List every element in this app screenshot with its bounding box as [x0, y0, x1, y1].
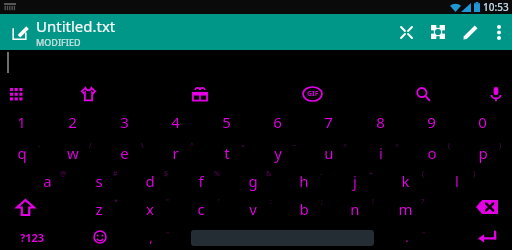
staticText: j	[353, 171, 357, 191]
button[interactable]: e	[103, 139, 154, 167]
staticText: 6	[273, 112, 282, 132]
button[interactable]: x	[128, 195, 179, 223]
staticText: 4	[171, 112, 180, 132]
button[interactable]: h	[282, 167, 333, 195]
staticText: _	[422, 225, 426, 235]
button[interactable]: Fullscreen	[390, 16, 422, 48]
button[interactable]: 8	[359, 108, 410, 136]
staticText: b	[299, 199, 309, 219]
staticText: m	[398, 199, 413, 219]
staticText: '	[218, 197, 220, 207]
staticText: e	[120, 143, 129, 163]
staticText: u	[324, 143, 334, 163]
button[interactable]: Shift	[0, 192, 51, 222]
staticText: n	[350, 199, 360, 219]
staticText: /	[89, 141, 92, 151]
button[interactable]: p	[461, 139, 512, 167]
staticText: z	[95, 199, 103, 219]
button[interactable]: ?123	[0, 224, 64, 250]
staticText: w	[67, 143, 79, 163]
button[interactable]: 0	[461, 108, 512, 136]
button[interactable]: c	[179, 195, 230, 223]
button[interactable]: m	[384, 195, 435, 223]
button[interactable]: v	[231, 195, 282, 223]
staticText: a	[43, 171, 52, 191]
staticText: %	[214, 169, 220, 179]
button[interactable]: Edit file	[4, 17, 34, 47]
button[interactable]: 7	[307, 108, 358, 136]
staticText: t	[224, 143, 230, 163]
staticText: *	[114, 197, 118, 207]
button[interactable]: o	[410, 139, 461, 167]
staticText: c	[197, 199, 205, 219]
staticText: 9	[427, 112, 436, 132]
staticText: GIF	[307, 89, 319, 99]
staticText: ?	[421, 197, 425, 207]
staticText: x	[146, 199, 154, 219]
button[interactable]: Edit	[454, 16, 486, 48]
staticText: q	[17, 143, 27, 163]
staticText: #	[113, 169, 118, 179]
button[interactable]: 9	[410, 108, 461, 136]
staticText: _	[166, 225, 170, 235]
button[interactable]: GIF	[298, 80, 326, 108]
button[interactable]: Stickers	[186, 80, 214, 108]
staticText: @	[60, 169, 67, 179]
button[interactable]: i	[359, 139, 410, 167]
staticText: 0	[478, 112, 487, 132]
staticText: +	[369, 169, 374, 179]
staticText: Untitled.txt	[36, 16, 116, 36]
button[interactable]: Backspace	[461, 192, 512, 222]
staticText: (	[448, 141, 451, 151]
staticText: 3	[120, 112, 129, 132]
staticText: MODIFIED	[36, 36, 81, 48]
button[interactable]: l	[435, 167, 486, 195]
button[interactable]: b	[282, 195, 333, 223]
button[interactable]: d	[128, 167, 179, 195]
button[interactable]: Voice input	[482, 80, 510, 108]
staticText: &	[266, 169, 272, 179]
button[interactable]: Emoji	[75, 224, 125, 250]
button[interactable]: 2	[51, 108, 102, 136]
button[interactable]: Themes	[74, 80, 102, 108]
button[interactable]: Enter	[461, 224, 512, 250]
staticText: "	[166, 197, 169, 207]
button[interactable]: g	[231, 167, 282, 195]
button[interactable]: ,	[129, 223, 180, 250]
button[interactable]: u	[307, 139, 358, 167]
staticText: -	[38, 141, 41, 151]
button[interactable]: .	[385, 223, 436, 250]
staticText: g	[248, 171, 258, 191]
button[interactable]: 4	[154, 108, 205, 136]
button[interactable]: j	[333, 167, 384, 195]
button[interactable]: y	[256, 139, 307, 167]
staticText: )	[499, 141, 502, 151]
button[interactable]: w	[51, 139, 102, 167]
button[interactable]: Settings	[422, 16, 454, 48]
staticText: y	[274, 143, 282, 163]
button[interactable]: s	[77, 167, 128, 195]
staticText: <	[343, 141, 348, 151]
staticText: 8	[376, 112, 385, 132]
button[interactable]: More options	[486, 19, 512, 45]
staticText: ?123	[20, 230, 45, 245]
button[interactable]: r	[154, 139, 205, 167]
button[interactable]: k	[384, 167, 435, 195]
button[interactable]: Search	[409, 80, 437, 108]
staticText: $	[164, 169, 169, 179]
button[interactable]: t	[205, 139, 256, 167]
button[interactable]: z	[77, 195, 128, 223]
button[interactable]: q	[0, 139, 51, 167]
button[interactable]: f	[179, 167, 230, 195]
button[interactable]: 6	[256, 108, 307, 136]
button[interactable]: Keyboard apps	[2, 80, 30, 108]
staticText: >	[395, 141, 400, 151]
button[interactable]: n	[333, 195, 384, 223]
staticText: -	[320, 169, 323, 179]
button[interactable]: a	[26, 167, 77, 195]
button[interactable]: 1	[0, 108, 51, 136]
staticText: 5	[222, 112, 231, 132]
button[interactable]: 5	[205, 108, 256, 136]
button[interactable]: 3	[103, 108, 154, 136]
